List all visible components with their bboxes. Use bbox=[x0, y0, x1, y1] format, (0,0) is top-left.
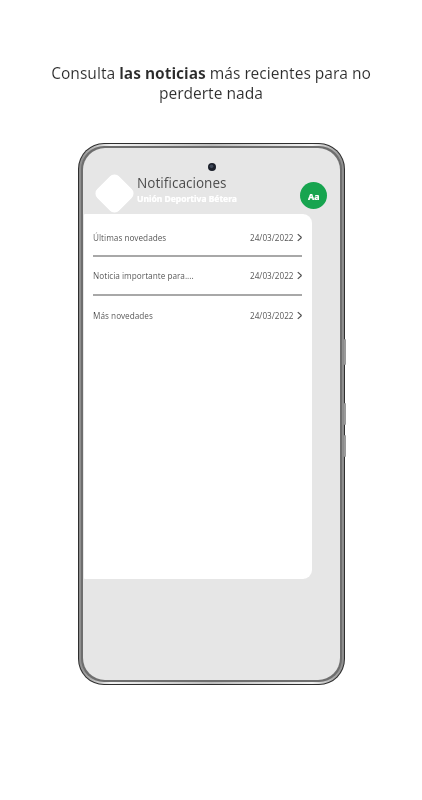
staticText: Consulta las noticias más recientes para… bbox=[48, 62, 374, 103]
button[interactable]: Más novedades bbox=[84, 310, 312, 321]
staticText: Notificaciones bbox=[137, 174, 227, 192]
button[interactable]: Cambiar tamaño de texto bbox=[300, 182, 327, 209]
button[interactable]: Noticia importante para.... bbox=[84, 270, 312, 281]
staticText: 24/03/2022 bbox=[250, 270, 294, 281]
staticText: Aa bbox=[308, 190, 320, 202]
staticText: Más novedades bbox=[93, 310, 153, 321]
staticText: 24/03/2022 bbox=[250, 232, 294, 243]
staticText: 24/03/2022 bbox=[250, 310, 294, 321]
staticText: Noticia importante para.... bbox=[93, 270, 194, 281]
button[interactable]: Últimas novedades bbox=[84, 232, 312, 243]
staticText: Unión Deportiva Bétera bbox=[137, 193, 237, 205]
staticText: Últimas novedades bbox=[93, 232, 167, 243]
